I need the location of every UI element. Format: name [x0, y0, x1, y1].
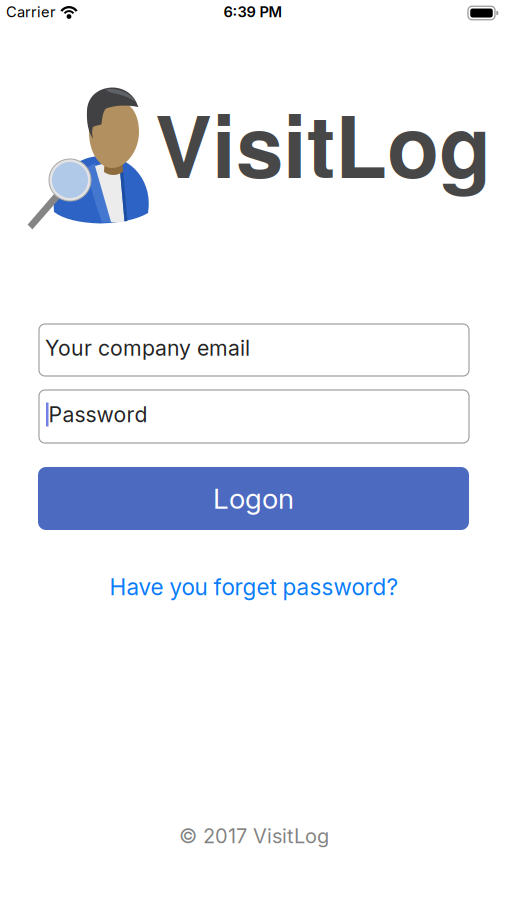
- button[interactable]: Password: [39, 390, 469, 443]
- staticText: Logon: [213, 482, 294, 515]
- button[interactable]: Logon: [38, 467, 469, 530]
- staticText: Carrier: [6, 3, 56, 21]
- staticText: Your company email: [45, 335, 250, 361]
- button[interactable]: Your company email: [39, 324, 469, 376]
- button[interactable]: Have you forget password?: [109, 574, 398, 600]
- staticText: VisitLog: [155, 82, 491, 204]
- staticText: 6:39 PM: [223, 3, 282, 21]
- staticText: Password: [48, 402, 147, 427]
- staticText: © 2017 VisitLog: [179, 824, 329, 848]
- staticText: Have you forget password?: [109, 574, 398, 600]
